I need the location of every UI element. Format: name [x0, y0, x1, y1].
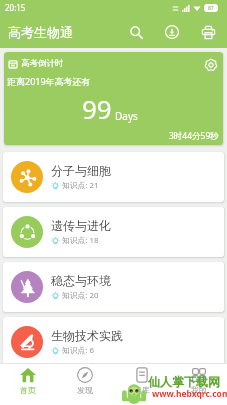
staticText: 高考生物通 [8, 24, 73, 40]
staticText: Days [115, 109, 138, 123]
button[interactable]: 设置 [203, 57, 219, 73]
staticText: 87 [208, 5, 214, 12]
staticText: 遗传与进化 [51, 218, 111, 233]
staticText: 知识点: 6 [62, 345, 94, 356]
staticText: 仙人掌下载网 [148, 374, 220, 389]
button[interactable]: 稳态与环境 [3, 262, 224, 312]
button[interactable]: 分子与细胞 [3, 152, 224, 202]
staticText: 知识点: 18 [62, 235, 99, 246]
staticText: 我的 [191, 385, 207, 395]
button[interactable]: 发现 [56, 364, 113, 398]
staticText: 发现 [77, 385, 93, 395]
staticText: 分子与细胞 [51, 163, 111, 178]
button[interactable]: 首页 [0, 364, 56, 398]
staticText: 3时44分59秒 [169, 130, 219, 142]
button[interactable]: 生物技术实践 [3, 317, 224, 367]
staticText: 题库 [134, 385, 150, 395]
button[interactable]: 搜索 [120, 16, 152, 48]
staticText: 99 [82, 91, 112, 126]
staticText: 知识点: 21 [62, 180, 99, 191]
staticText: 20:15 [5, 2, 26, 13]
staticText: 高考倒计时 [21, 58, 64, 69]
button[interactable]: 下载 [156, 16, 188, 48]
staticText: 知识点: 20 [62, 290, 99, 301]
button[interactable]: 高考倒计时 [4, 52, 223, 145]
button[interactable]: 题库 [113, 364, 170, 398]
button[interactable]: 打印 [192, 16, 224, 48]
staticText: 首页 [20, 385, 36, 395]
button[interactable]: 我的 [170, 364, 227, 398]
staticText: 距离2019年高考还有 [7, 75, 91, 87]
staticText: www.hebxqrc.com [152, 388, 227, 400]
button[interactable]: 遗传与进化 [3, 207, 224, 257]
staticText: 稳态与环境 [51, 273, 111, 288]
staticText: 生物技术实践 [51, 328, 123, 343]
